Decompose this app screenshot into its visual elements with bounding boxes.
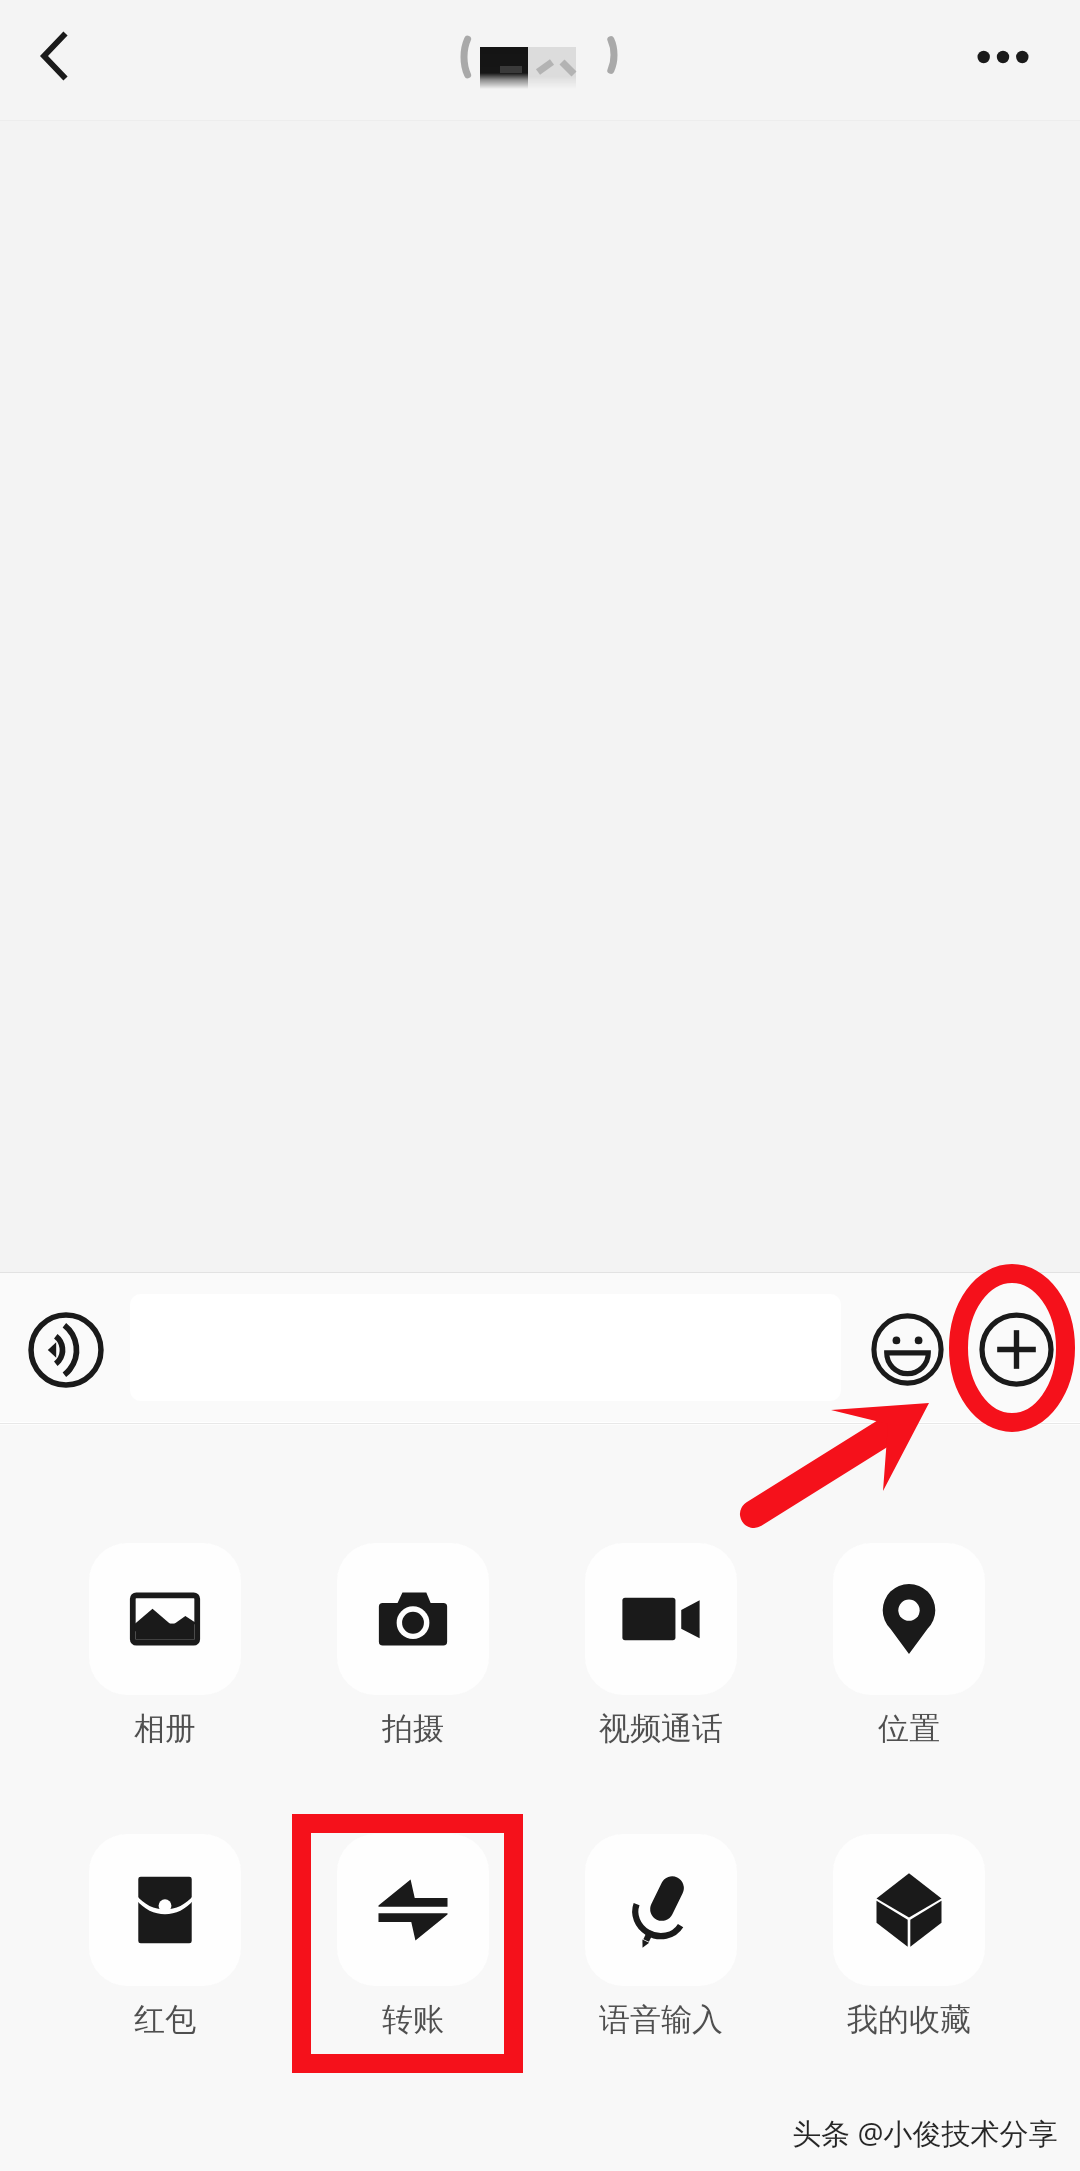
staticText: 头条 @小俊技术分享 xyxy=(792,2113,1058,2153)
button[interactable]: 位置 xyxy=(833,1543,985,1748)
staticText: 拍摄 xyxy=(382,1709,444,1748)
staticText: 我的收藏 xyxy=(847,2000,971,2039)
button[interactable]: 我的收藏 xyxy=(833,1834,985,2039)
button[interactable]: 视频通话 xyxy=(585,1543,737,1748)
staticText: 相册 xyxy=(134,1709,196,1748)
button[interactable]: 红包 xyxy=(89,1834,241,2039)
button[interactable]: More functions xyxy=(958,1291,1074,1407)
button[interactable]: 相册 xyxy=(89,1543,241,1748)
staticText: 转账 xyxy=(382,2000,444,2039)
button[interactable]: More options xyxy=(940,0,1080,120)
staticText: 视频通话 xyxy=(599,1709,723,1748)
staticText: 语音输入 xyxy=(599,2000,723,2039)
button[interactable]: Emoji xyxy=(849,1291,965,1407)
button[interactable]: 拍摄 xyxy=(337,1543,489,1748)
staticText: 位置 xyxy=(878,1709,940,1748)
staticText: 红包 xyxy=(134,2000,196,2039)
button[interactable]: Back xyxy=(0,0,120,120)
button[interactable]: 语音输入 xyxy=(585,1834,737,2039)
button[interactable]: 转账 xyxy=(337,1834,489,2039)
button[interactable]: Voice input xyxy=(8,1292,124,1408)
